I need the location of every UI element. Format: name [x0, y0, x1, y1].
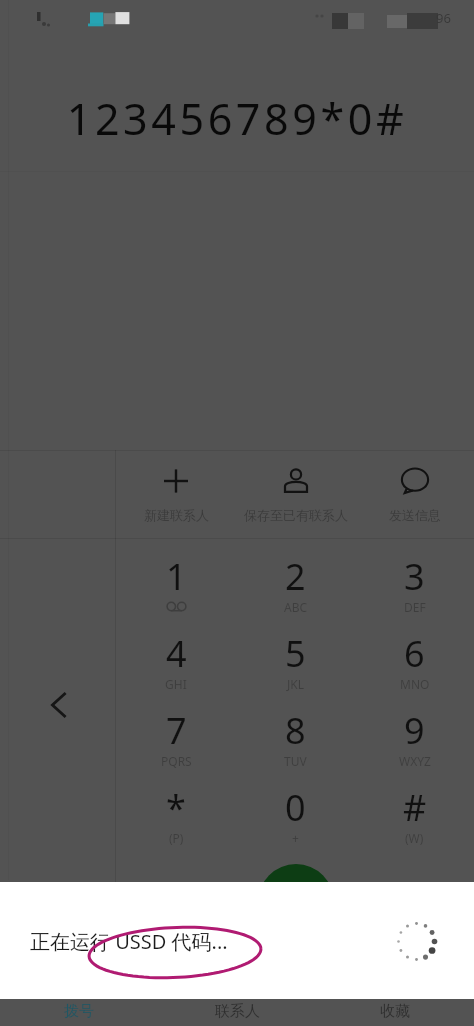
staticText: WXYZ	[399, 753, 431, 769]
staticText: (W)	[405, 830, 424, 846]
button[interactable]: 拨号	[0, 999, 158, 1026]
button[interactable]: 新建联系人	[116, 451, 236, 538]
button[interactable]: 2	[236, 539, 355, 616]
staticText: GHI	[165, 676, 187, 692]
button[interactable]: 保存至已有联系人	[236, 451, 355, 538]
staticText: MNO	[400, 676, 430, 692]
staticText: PQRS	[161, 753, 192, 769]
staticText: 发送信息	[389, 507, 441, 523]
staticText: #	[403, 783, 427, 832]
button[interactable]: 7	[116, 693, 236, 770]
button[interactable]: 6	[355, 616, 474, 693]
staticText: 96	[436, 9, 451, 27]
staticText: 9	[404, 706, 425, 755]
staticText: 1	[166, 552, 187, 601]
button[interactable]: *	[116, 770, 236, 847]
staticText: TUV	[284, 753, 307, 769]
staticText: 收藏	[380, 1002, 410, 1021]
staticText: ABC	[284, 599, 308, 615]
staticText: 0	[285, 783, 306, 832]
staticText: 5	[285, 629, 306, 678]
staticText: *	[166, 783, 186, 832]
button[interactable]: 0	[236, 770, 355, 847]
staticText: 2	[285, 552, 306, 601]
button[interactable]: 发送信息	[355, 451, 474, 538]
staticText: 正在运行 USSD 代码...	[30, 928, 228, 955]
button[interactable]: 4	[116, 616, 236, 693]
button[interactable]: 9	[355, 693, 474, 770]
staticText: 6	[404, 629, 425, 678]
button[interactable]: Back	[35, 681, 83, 729]
button[interactable]: #	[355, 770, 474, 847]
staticText: +	[292, 830, 299, 846]
button[interactable]: 5	[236, 616, 355, 693]
button[interactable]: 1	[116, 539, 236, 616]
button[interactable]: 联系人	[158, 999, 316, 1026]
button[interactable]: 3	[355, 539, 474, 616]
staticText: DEF	[404, 599, 426, 615]
staticText: 联系人	[215, 1002, 260, 1021]
staticText: 3	[404, 552, 425, 601]
staticText: 拨号	[64, 1002, 94, 1021]
staticText: 保存至已有联系人	[244, 507, 348, 523]
staticText: (P)	[169, 830, 184, 846]
button[interactable]: 收藏	[316, 999, 474, 1026]
button[interactable]: 8	[236, 693, 355, 770]
staticText: 7	[166, 706, 187, 755]
staticText: 8	[285, 706, 306, 755]
staticText: 123456789*0#	[0, 89, 474, 148]
staticText: 4	[166, 629, 187, 678]
staticText: 新建联系人	[144, 507, 209, 523]
button[interactable]: Call	[258, 864, 334, 940]
staticText: JKL	[287, 676, 304, 692]
